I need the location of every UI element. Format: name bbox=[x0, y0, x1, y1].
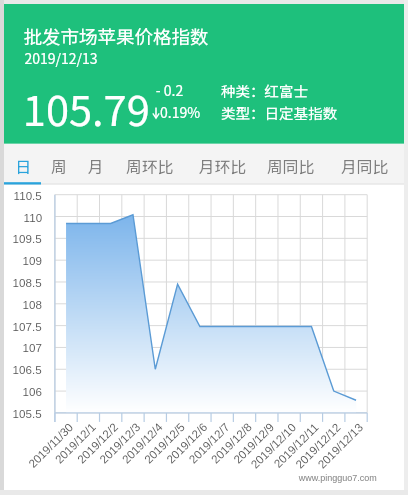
button[interactable]: 批发市场苹果价格指数 2019/12/13 105.79 bbox=[4, 4, 404, 144]
button[interactable]: 月环比 bbox=[196, 144, 250, 185]
button[interactable]: 周同比 bbox=[264, 144, 318, 185]
button[interactable]: 日 bbox=[7, 144, 39, 185]
button[interactable]: 周环比 bbox=[123, 144, 177, 185]
button[interactable]: 月同比 bbox=[338, 144, 392, 185]
button[interactable]: 月 bbox=[80, 144, 112, 185]
button[interactable]: 周 bbox=[43, 144, 75, 185]
